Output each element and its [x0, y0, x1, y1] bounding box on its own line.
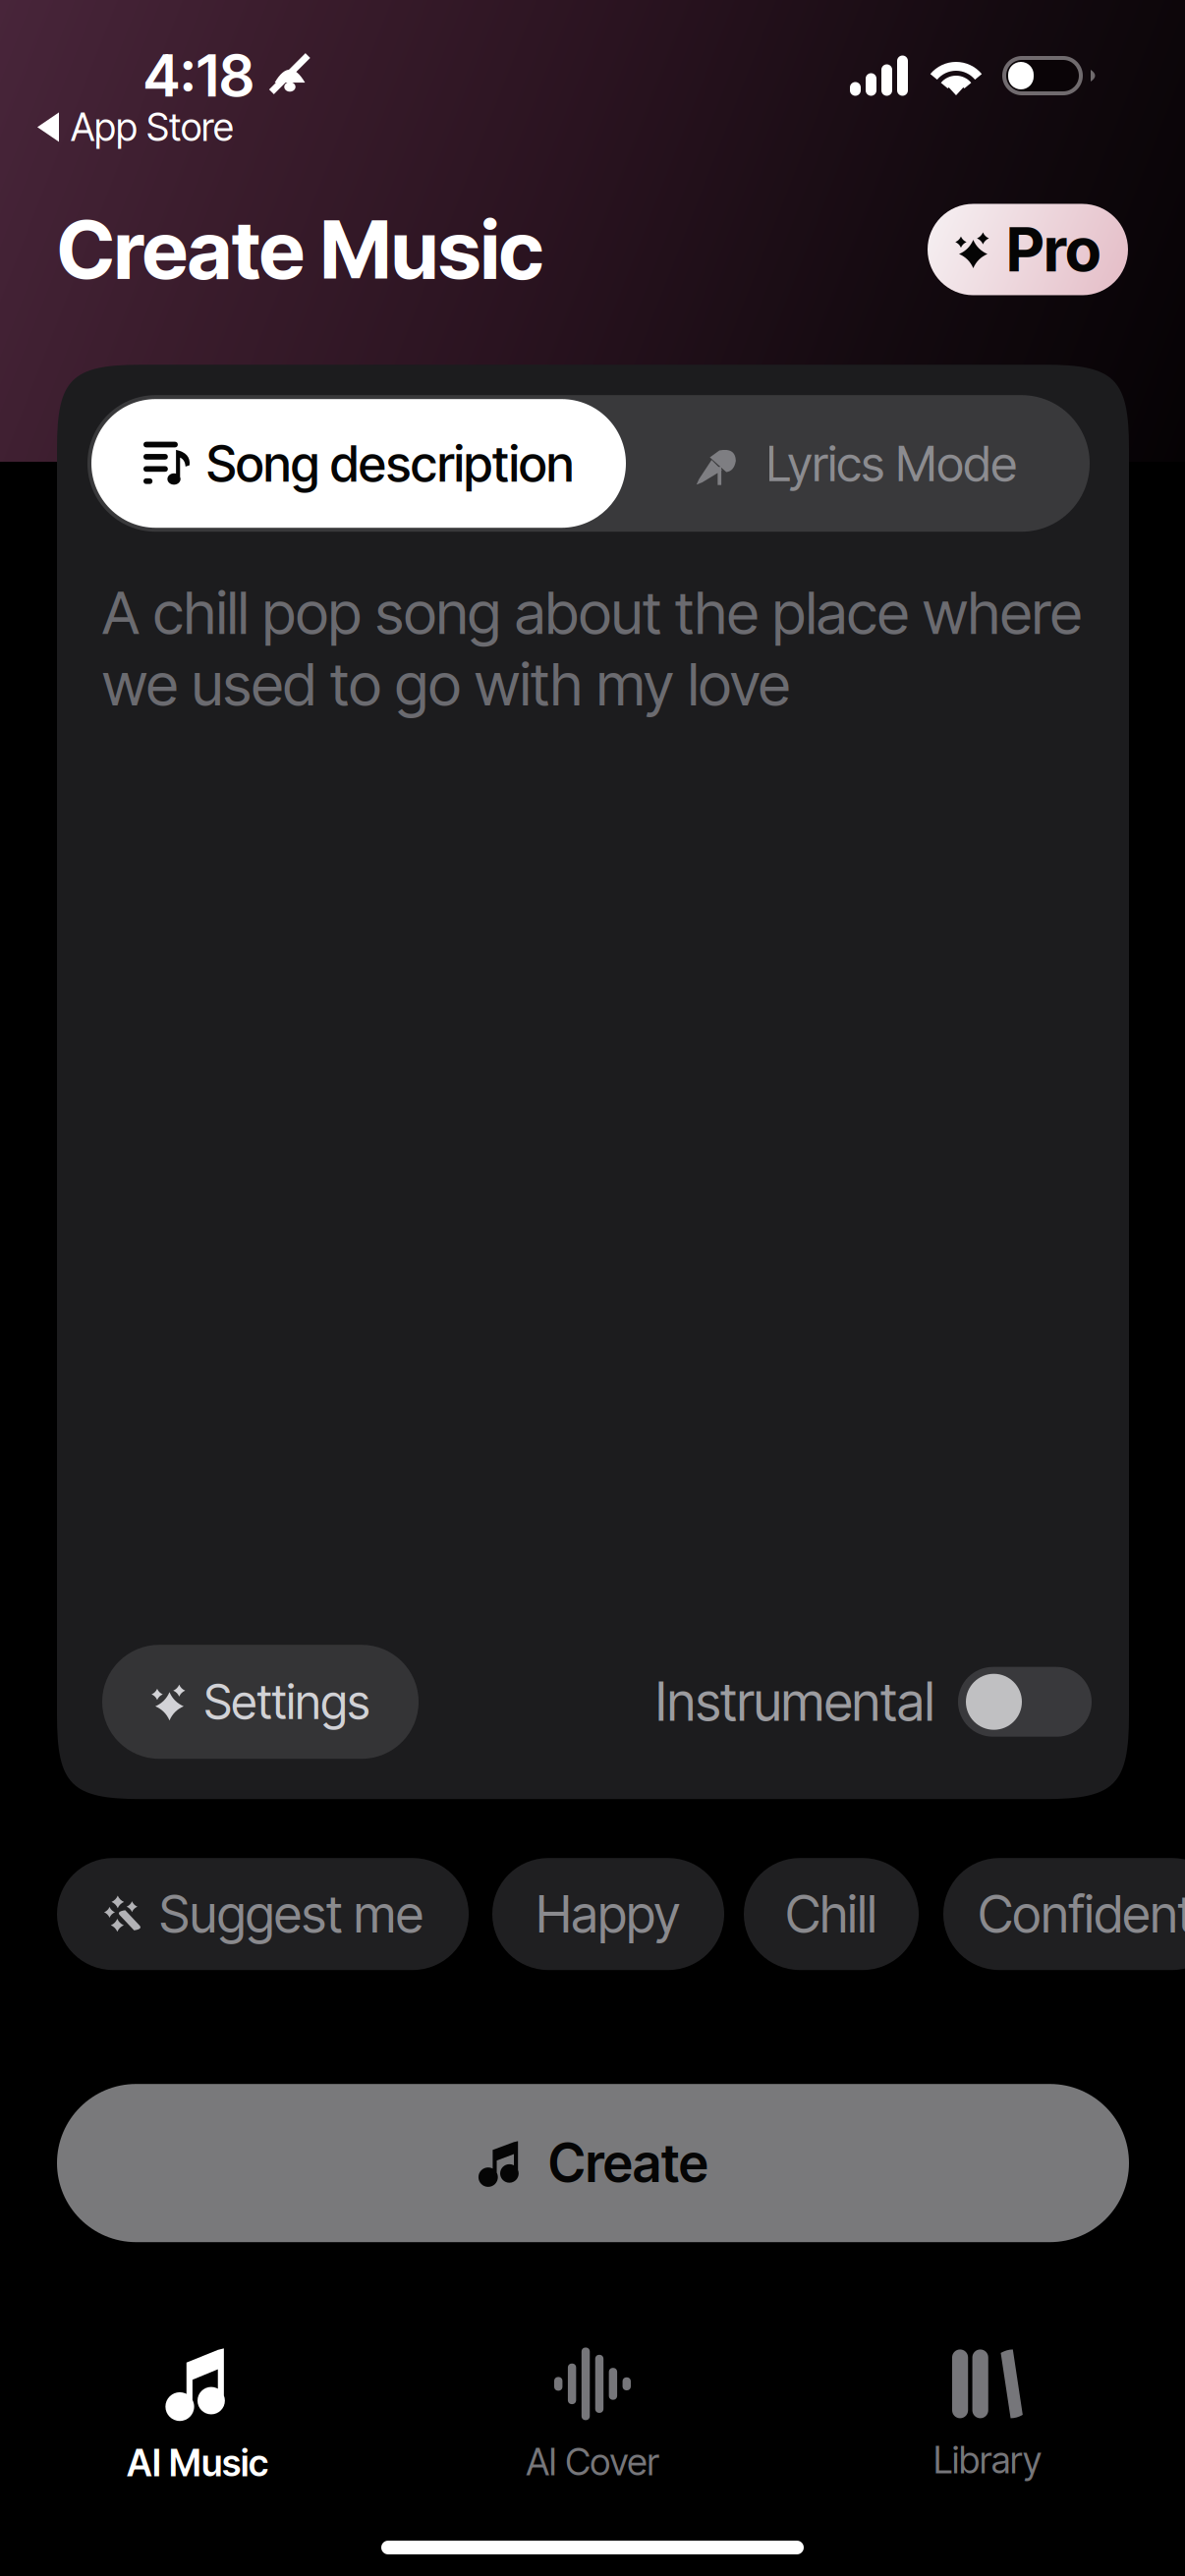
button[interactable]: Chill	[744, 1858, 919, 1970]
button[interactable]: Library	[790, 2332, 1185, 2499]
button[interactable]: Settings	[102, 1645, 419, 1759]
staticText: Suggest me	[159, 1883, 423, 1945]
staticText: AI Music	[127, 2441, 268, 2485]
staticText: Pro	[1007, 213, 1101, 286]
staticText: 4:18	[143, 41, 254, 111]
staticText: Settings	[204, 1673, 370, 1730]
staticText: Song description	[206, 433, 574, 493]
button[interactable]: Pro	[928, 204, 1128, 295]
staticText: Chill	[786, 1883, 877, 1945]
staticText: Lyrics Mode	[766, 434, 1016, 493]
staticText: Instrumental	[655, 1670, 934, 1733]
staticText: AI Cover	[526, 2440, 659, 2484]
staticText: Create Music	[57, 201, 543, 298]
button[interactable]: Suggest me	[57, 1858, 469, 1970]
button[interactable]: Lyrics Mode	[626, 399, 1086, 528]
button[interactable]: Instrumental	[958, 1667, 1092, 1737]
button[interactable]: Create	[57, 2084, 1129, 2242]
staticText: Confident	[978, 1883, 1185, 1945]
staticText: A chill pop song about the place where w…	[102, 577, 1082, 720]
button[interactable]: Happy	[492, 1858, 724, 1970]
button[interactable]: AI Music	[0, 2332, 395, 2499]
button[interactable]: AI Cover	[395, 2332, 790, 2499]
staticText: Library	[933, 2438, 1042, 2482]
button[interactable]: Song description	[91, 399, 626, 528]
staticText: App Store	[71, 104, 234, 150]
button[interactable]: Confident	[943, 1858, 1185, 1970]
staticText: Happy	[536, 1883, 680, 1945]
staticText: Create	[548, 2131, 708, 2195]
